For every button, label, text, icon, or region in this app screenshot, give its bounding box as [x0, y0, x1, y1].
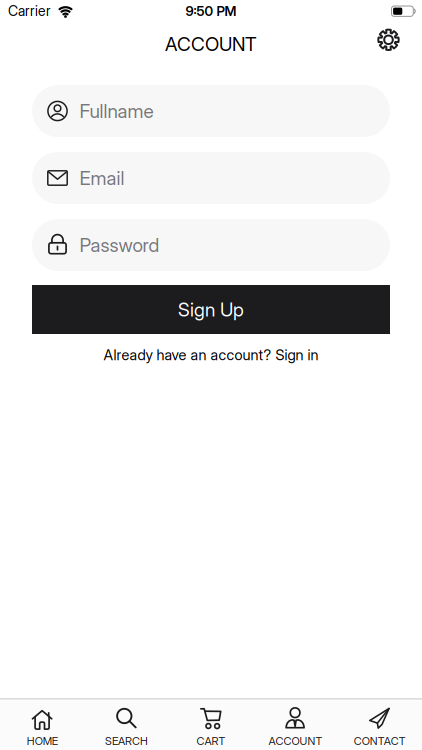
staticText: Carrier — [8, 2, 51, 19]
staticText: SEARCH — [105, 734, 148, 748]
staticText: ACCOUNT — [268, 734, 322, 748]
button[interactable]: Fullname — [32, 85, 390, 137]
staticText: ACCOUNT — [165, 32, 257, 55]
staticText: CONTACT — [354, 734, 406, 748]
button[interactable]: ACCOUNT — [253, 706, 338, 748]
button[interactable] — [377, 28, 422, 51]
button[interactable]: HOME — [0, 706, 84, 748]
staticText: HOME — [27, 734, 58, 748]
staticText: Sign Up — [178, 298, 244, 321]
staticText: Already have an account? Sign in — [103, 346, 318, 364]
staticText: CART — [196, 734, 225, 748]
staticText: Email — [79, 166, 124, 189]
button[interactable]: Already have an account? Sign in — [103, 346, 318, 364]
staticText: 9:50 PM — [185, 3, 236, 19]
button[interactable]: Email — [32, 152, 390, 204]
button[interactable]: CONTACT — [338, 706, 422, 748]
staticText: Password — [79, 233, 159, 256]
button[interactable]: Password — [32, 219, 390, 271]
button[interactable]: Sign Up — [32, 285, 390, 334]
button[interactable]: CART — [169, 706, 253, 748]
button[interactable]: SEARCH — [84, 706, 169, 748]
staticText: Fullname — [79, 99, 153, 122]
